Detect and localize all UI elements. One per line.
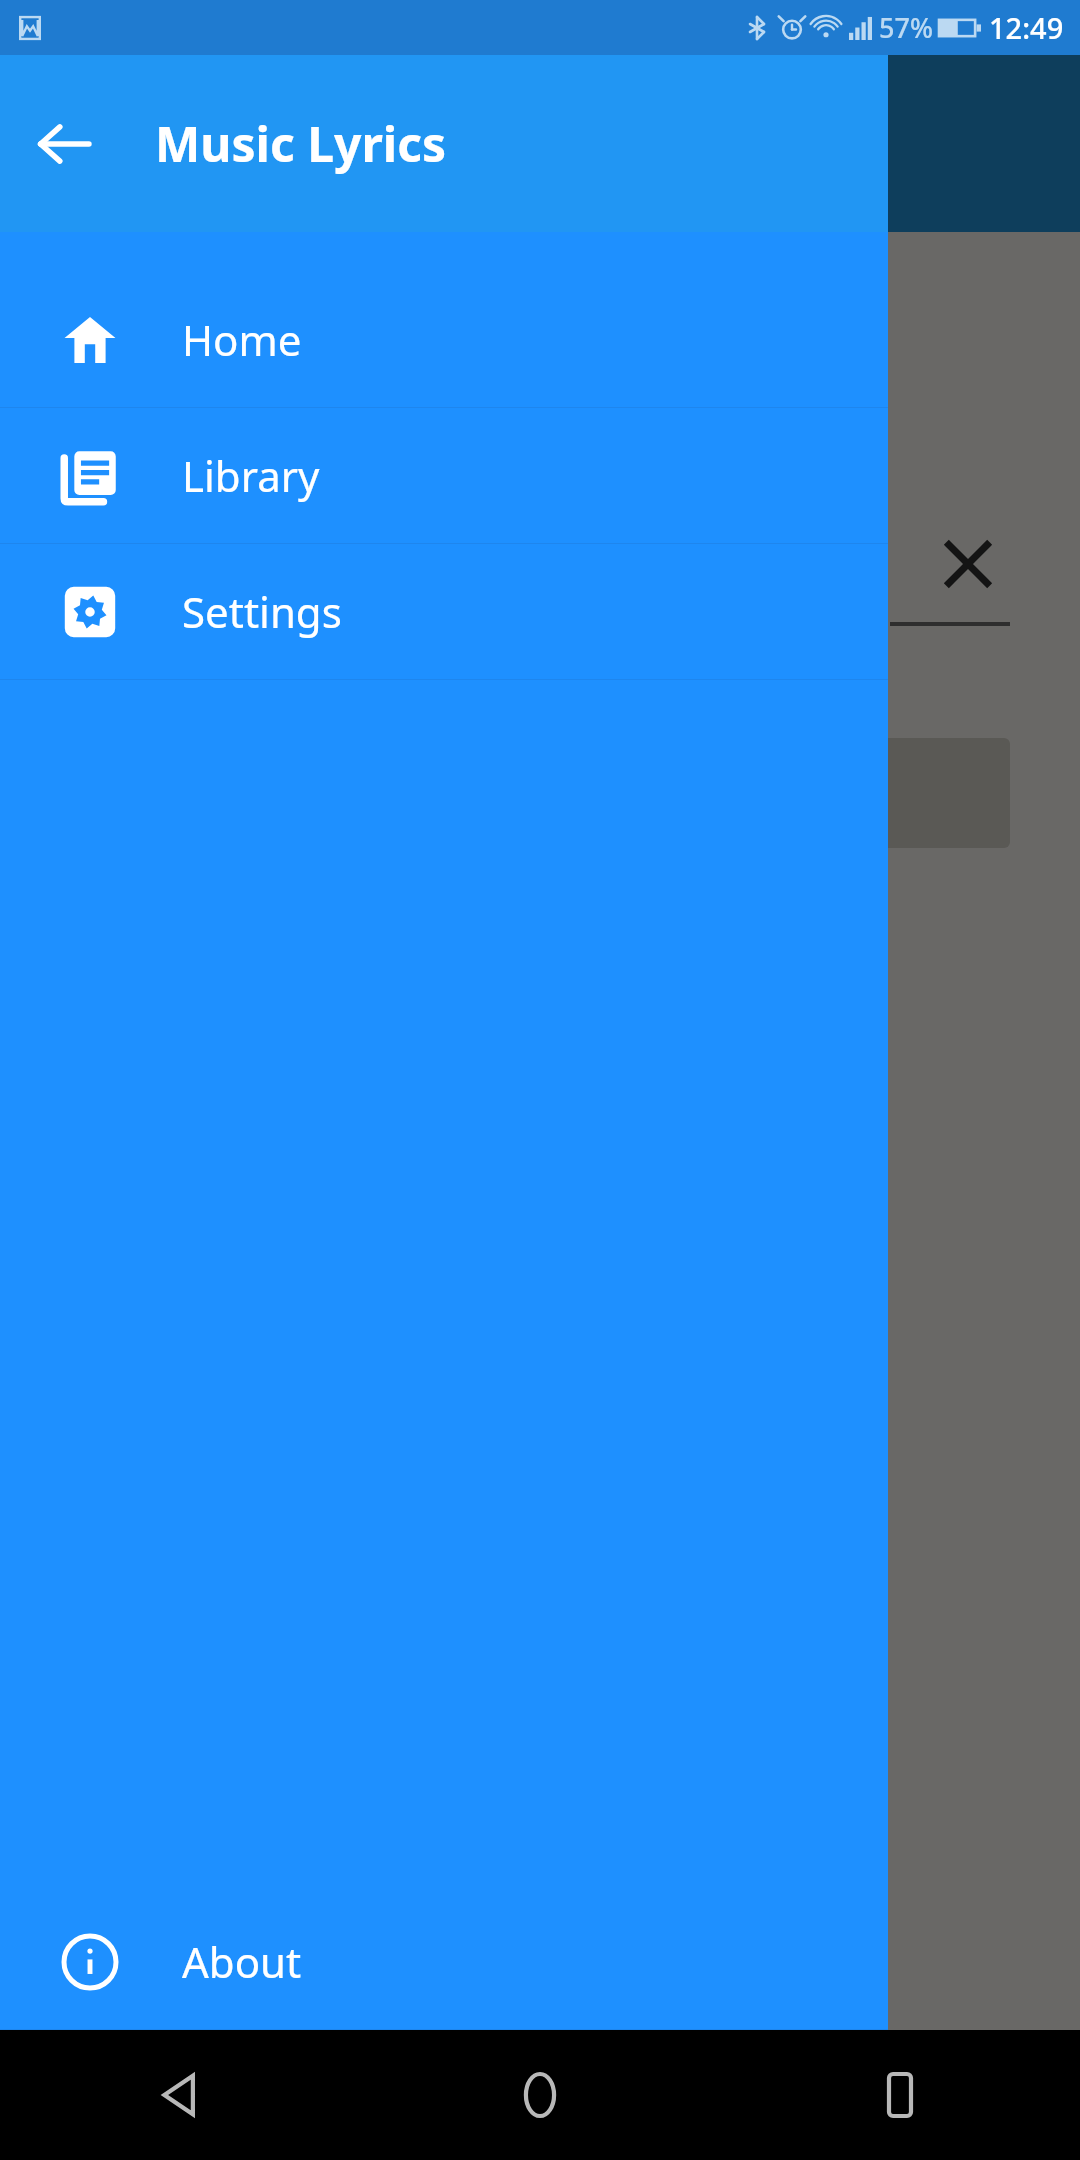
button[interactable]: Home	[360, 2030, 720, 2160]
button[interactable]: Settings	[0, 544, 888, 679]
staticText: Home	[182, 311, 302, 368]
button[interactable]: Back	[0, 2030, 360, 2160]
staticText: Library	[182, 447, 320, 504]
staticText: 57%	[879, 9, 933, 46]
button[interactable]: Recents	[720, 2030, 1080, 2160]
button[interactable]: Library	[0, 408, 888, 543]
staticText: About	[182, 1933, 302, 1990]
staticText: Music Lyrics	[155, 111, 447, 176]
staticText: Settings	[182, 583, 342, 640]
button[interactable]: Clear	[928, 524, 1008, 604]
staticText: 12:49	[989, 8, 1064, 47]
button[interactable]: About	[0, 1894, 888, 2029]
button[interactable]: Home	[0, 272, 888, 407]
button[interactable]: Back	[26, 106, 102, 182]
